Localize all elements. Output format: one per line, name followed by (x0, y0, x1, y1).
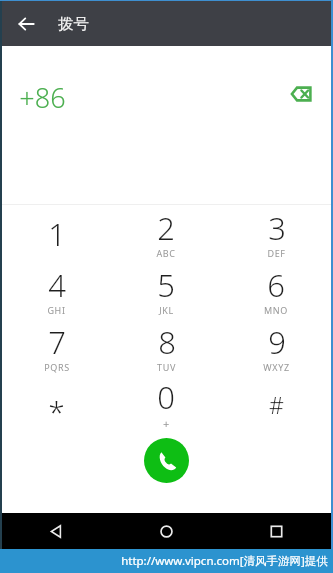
staticText: # (269, 389, 284, 420)
staticText: 7 (48, 321, 66, 363)
staticText: 2 (157, 207, 175, 249)
staticText: +86 (19, 79, 66, 116)
staticText: 6 (267, 264, 285, 306)
staticText: 0 (157, 376, 175, 418)
button[interactable]: 9 (221, 319, 331, 376)
staticText: 8 (158, 321, 176, 363)
staticText: MNO (264, 304, 288, 316)
staticText: * (48, 391, 65, 432)
staticText: 拨号 (58, 14, 89, 34)
staticText: + (163, 416, 170, 431)
button[interactable]: Recent apps (221, 513, 331, 549)
staticText: WXYZ (263, 361, 290, 373)
button[interactable]: 4 (2, 262, 111, 319)
staticText: 1 (48, 213, 66, 255)
staticText: GHI (47, 304, 66, 316)
button[interactable]: 0 (111, 376, 221, 433)
button[interactable]: 5 (111, 262, 221, 319)
button[interactable]: * (2, 376, 111, 433)
button[interactable]: Back (2, 1, 50, 46)
staticText: TUV (157, 361, 176, 373)
button[interactable]: 1 (2, 205, 111, 262)
button[interactable]: 3 (221, 205, 331, 262)
staticText: 5 (157, 264, 175, 306)
staticText: http://www.vipcn.com[清风手游网]提供 (121, 553, 328, 569)
staticText: 4 (48, 264, 66, 306)
button[interactable]: Backspace (281, 74, 321, 114)
button[interactable]: 2 (111, 205, 221, 262)
staticText: ABC (156, 247, 176, 259)
button[interactable]: Call (144, 438, 189, 483)
staticText: 9 (268, 321, 286, 363)
staticText: 3 (268, 207, 286, 249)
button[interactable]: Home (111, 513, 221, 549)
button[interactable]: # (221, 376, 331, 433)
staticText: JKL (159, 304, 174, 316)
button[interactable]: 8 (111, 319, 221, 376)
button[interactable]: 7 (2, 319, 111, 376)
staticText: DEF (267, 247, 286, 259)
staticText: PQRS (44, 361, 70, 373)
button[interactable]: 6 (221, 262, 331, 319)
button[interactable]: Back (2, 513, 111, 549)
